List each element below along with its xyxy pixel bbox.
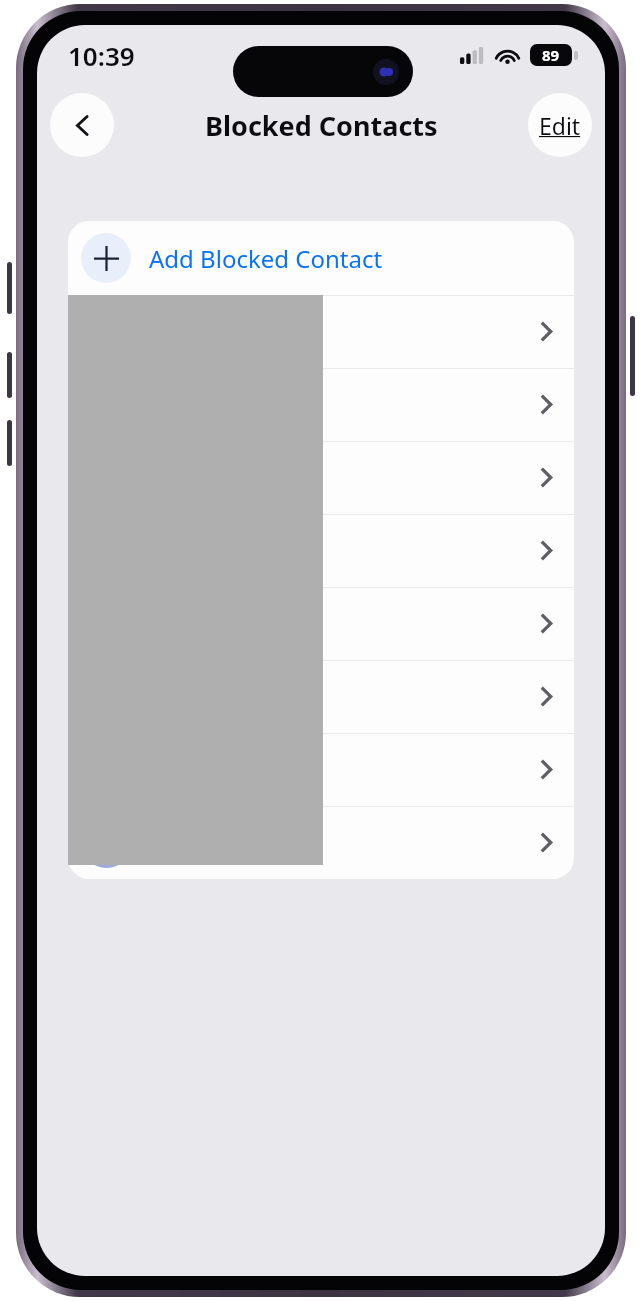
button[interactable] (68, 368, 574, 441)
staticText: Blocked Contacts (205, 107, 438, 144)
staticText: Add Blocked Contact (149, 242, 383, 275)
button[interactable] (68, 806, 574, 879)
button[interactable] (68, 441, 574, 514)
button[interactable] (68, 514, 574, 587)
button[interactable]: Back (50, 93, 114, 157)
button[interactable]: Add Blocked Contact (68, 221, 574, 295)
button[interactable] (68, 660, 574, 733)
button[interactable] (68, 733, 574, 806)
button[interactable] (68, 587, 574, 660)
button[interactable]: Edit (528, 93, 592, 157)
button[interactable] (68, 295, 574, 368)
staticText: 89 (542, 45, 560, 65)
staticText: Edit (539, 110, 581, 141)
staticText: 10:39 (68, 38, 135, 73)
